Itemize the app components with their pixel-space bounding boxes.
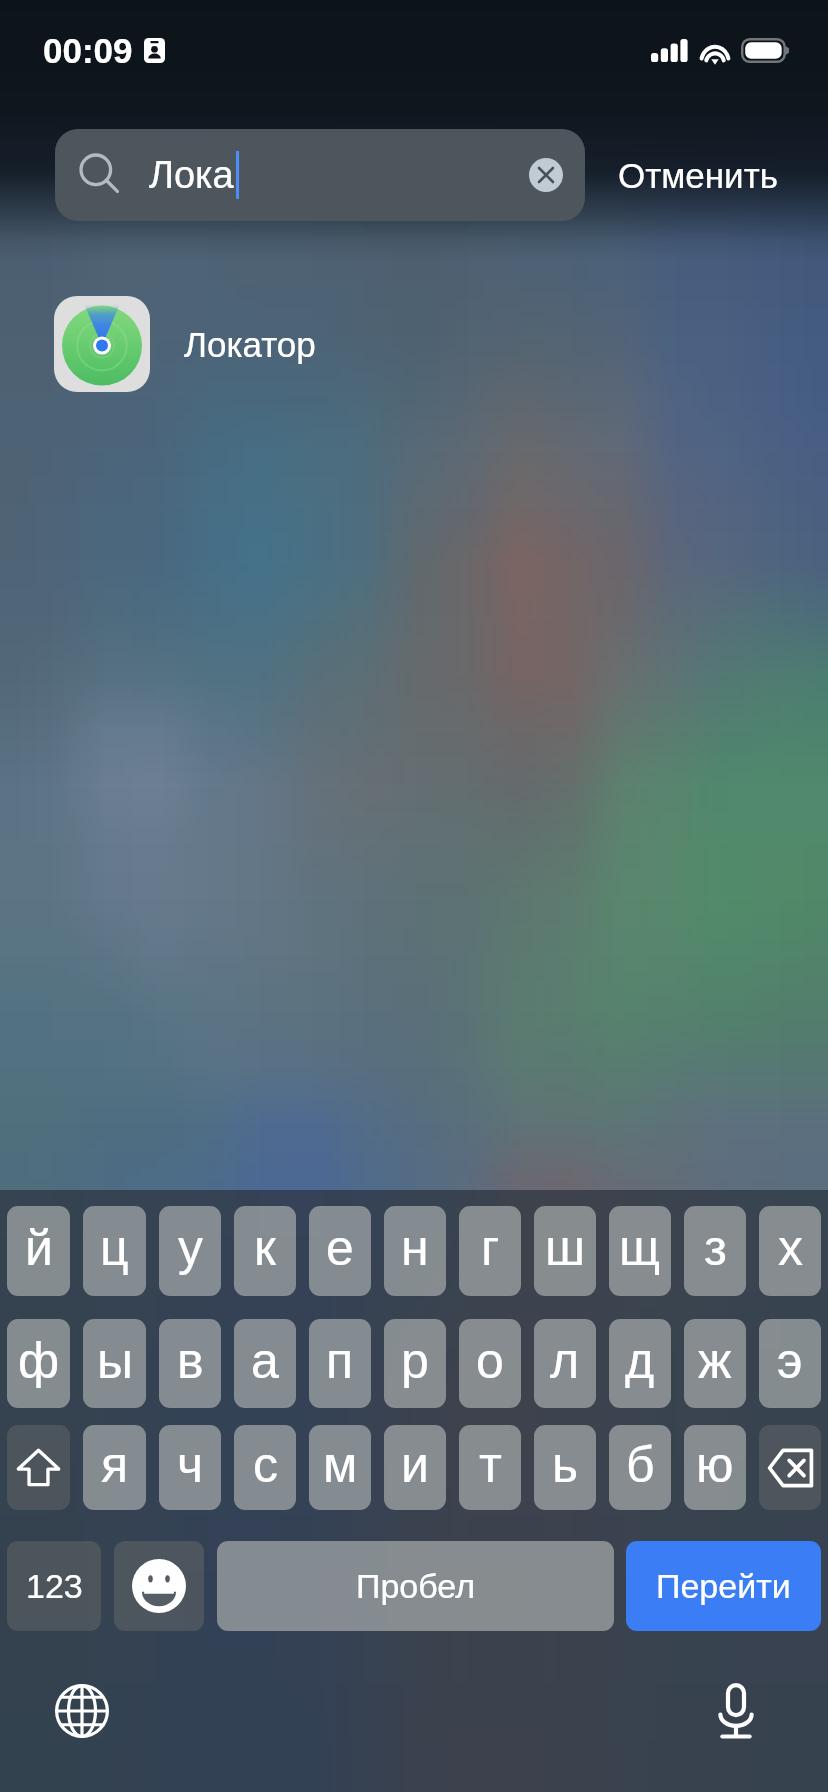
staticText: т — [479, 1437, 502, 1493]
staticText: у — [178, 1220, 203, 1276]
button[interactable]: Emoji — [114, 1541, 204, 1631]
staticText: й — [25, 1220, 53, 1276]
button[interactable]: э — [759, 1319, 821, 1408]
staticText: л — [550, 1333, 580, 1389]
button[interactable]: Перейти — [626, 1541, 821, 1631]
button[interactable]: з — [684, 1206, 746, 1296]
button[interactable]: ж — [684, 1319, 746, 1408]
staticText: Перейти — [656, 1567, 791, 1605]
staticText: я — [101, 1437, 129, 1493]
button[interactable]: Shift — [7, 1425, 70, 1510]
button[interactable]: ф — [7, 1319, 70, 1408]
button[interactable]: Локатор — [0, 288, 828, 400]
staticText: г — [481, 1220, 500, 1276]
button[interactable]: Change keyboard — [52, 1681, 112, 1741]
button[interactable]: к — [234, 1206, 296, 1296]
staticText: с — [253, 1437, 278, 1493]
button[interactable]: Лока — [55, 129, 585, 221]
button[interactable]: у — [159, 1206, 221, 1296]
button[interactable]: Dictation — [706, 1681, 766, 1741]
staticText: ы — [97, 1333, 133, 1389]
button[interactable]: в — [159, 1319, 221, 1408]
staticText: п — [326, 1333, 354, 1389]
staticText: Отменить — [618, 156, 778, 195]
staticText: ь — [552, 1437, 579, 1493]
button[interactable]: м — [309, 1425, 371, 1510]
staticText: в — [177, 1333, 204, 1389]
staticText: а — [251, 1333, 279, 1389]
button[interactable]: и — [384, 1425, 446, 1510]
staticText: б — [626, 1437, 655, 1493]
button[interactable]: щ — [609, 1206, 671, 1296]
staticText: р — [401, 1333, 429, 1389]
staticText: ю — [696, 1437, 734, 1493]
button[interactable]: г — [459, 1206, 521, 1296]
button[interactable]: ь — [534, 1425, 596, 1510]
staticText: д — [625, 1333, 655, 1389]
button[interactable]: п — [309, 1319, 371, 1408]
button[interactable]: й — [7, 1206, 70, 1296]
staticText: ж — [698, 1333, 732, 1389]
button[interactable]: д — [609, 1319, 671, 1408]
staticText: и — [401, 1437, 429, 1493]
button[interactable]: ч — [159, 1425, 221, 1510]
button[interactable]: Пробел — [217, 1541, 614, 1631]
staticText: ф — [18, 1333, 60, 1389]
button[interactable]: Clear — [529, 158, 563, 192]
staticText: Локатор — [184, 325, 316, 364]
button[interactable]: Backspace — [759, 1425, 821, 1510]
staticText: о — [476, 1333, 504, 1389]
button[interactable]: т — [459, 1425, 521, 1510]
staticText: ш — [545, 1220, 586, 1276]
staticText: ц — [100, 1220, 129, 1276]
staticText: н — [401, 1220, 429, 1276]
button[interactable]: р — [384, 1319, 446, 1408]
button[interactable]: а — [234, 1319, 296, 1408]
staticText: 123 — [26, 1567, 83, 1605]
button[interactable]: ш — [534, 1206, 596, 1296]
button[interactable]: ц — [83, 1206, 146, 1296]
button[interactable]: о — [459, 1319, 521, 1408]
staticText: к — [254, 1220, 276, 1276]
staticText: Пробел — [356, 1567, 475, 1605]
staticText: е — [326, 1220, 354, 1276]
button[interactable]: ы — [83, 1319, 146, 1408]
button[interactable]: я — [83, 1425, 146, 1510]
button[interactable]: е — [309, 1206, 371, 1296]
staticText: э — [777, 1333, 803, 1389]
button[interactable]: х — [759, 1206, 821, 1296]
staticText: з — [704, 1220, 727, 1276]
staticText: щ — [619, 1220, 661, 1276]
button[interactable]: н — [384, 1206, 446, 1296]
button[interactable]: Отменить — [602, 129, 794, 221]
button[interactable]: с — [234, 1425, 296, 1510]
staticText: 00:09 — [43, 31, 133, 70]
staticText: х — [778, 1220, 803, 1276]
button[interactable]: 123 — [7, 1541, 101, 1631]
button[interactable]: ю — [684, 1425, 746, 1510]
button[interactable]: б — [609, 1425, 671, 1510]
button[interactable]: л — [534, 1319, 596, 1408]
staticText: ч — [177, 1437, 204, 1493]
staticText: Лока — [149, 154, 234, 196]
staticText: м — [323, 1437, 358, 1493]
